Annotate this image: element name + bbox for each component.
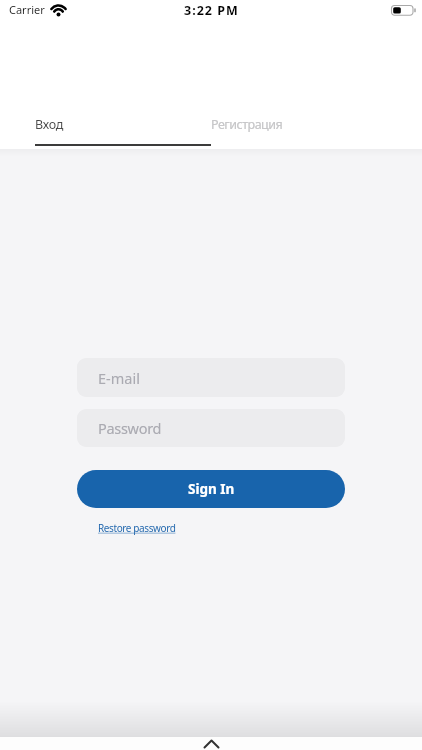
button[interactable] [0, 737, 422, 750]
staticText: Carrier [9, 2, 45, 17]
staticText: 3:22 PM [184, 2, 239, 19]
staticText: Регистрация [211, 116, 283, 133]
button[interactable]: Вход [35, 110, 211, 138]
staticText: Password [98, 418, 162, 438]
button[interactable]: Регистрация [211, 110, 387, 138]
staticText: Restore password [98, 521, 176, 535]
button[interactable]: E-mail [77, 358, 345, 397]
staticText: E-mail [98, 368, 140, 388]
button[interactable]: Password [77, 409, 345, 447]
button[interactable]: Restore password [98, 521, 176, 535]
button[interactable]: Sign In [77, 470, 345, 508]
staticText: Sign In [188, 480, 235, 498]
staticText: Вход [35, 116, 64, 133]
